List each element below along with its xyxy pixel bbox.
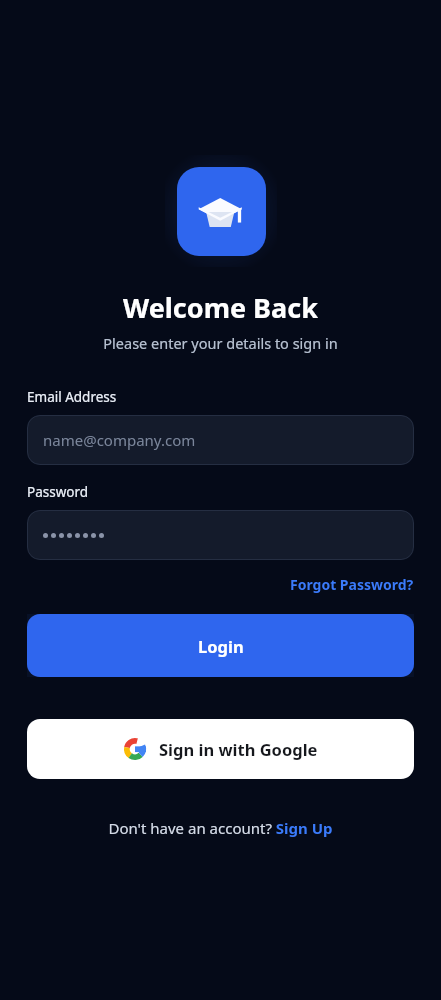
staticText: Don't have an account? Sign Up <box>108 818 333 838</box>
staticText: Please enter your details to sign in <box>103 333 338 353</box>
button[interactable]: Sign in with Google <box>27 719 414 779</box>
staticText: Email Address <box>27 388 117 406</box>
staticText: Sign in with Google <box>159 738 318 760</box>
button[interactable] <box>27 510 414 560</box>
button[interactable]: Forgot Password? <box>290 575 414 594</box>
button[interactable]: Login <box>27 614 414 677</box>
button[interactable]: name@company.com <box>27 415 414 465</box>
staticText: name@company.com <box>43 430 196 450</box>
staticText: Password <box>27 483 89 501</box>
staticText: Welcome Back <box>123 289 318 326</box>
staticText: Forgot Password? <box>290 575 414 594</box>
staticText: Login <box>198 635 244 657</box>
button[interactable]: Don't have an account? Sign Up <box>108 818 333 838</box>
button[interactable]: App logo <box>177 167 266 256</box>
